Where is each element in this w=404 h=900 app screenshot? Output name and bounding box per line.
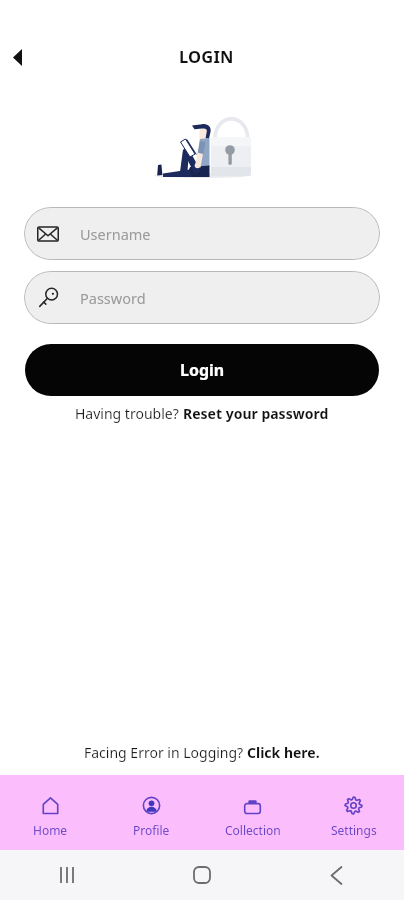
button[interactable]: Profile — [101, 775, 202, 850]
button[interactable]: Recent apps — [0, 850, 134, 900]
button[interactable]: Login — [25, 344, 379, 396]
button[interactable]: Reset your password — [183, 404, 329, 423]
button[interactable]: Click here. — [247, 743, 320, 762]
button[interactable]: Collection — [202, 775, 303, 850]
button[interactable]: Password — [24, 271, 380, 324]
button[interactable]: Back — [269, 850, 404, 900]
staticText: Facing Error in Logging? — [84, 743, 247, 762]
button[interactable]: Home — [134, 850, 269, 900]
button[interactable]: Back — [0, 37, 34, 77]
staticText: Having trouble? — [75, 404, 183, 423]
staticText: Login — [180, 359, 225, 381]
staticText: Settings — [331, 822, 377, 838]
staticText: LOGIN — [179, 45, 234, 67]
staticText: Collection — [225, 822, 281, 838]
staticText: Home — [33, 822, 68, 838]
staticText: Profile — [133, 822, 170, 838]
button[interactable]: Username — [24, 207, 380, 260]
staticText: Username — [80, 224, 151, 244]
button[interactable]: Settings — [303, 775, 404, 850]
staticText: Password — [80, 288, 146, 308]
button[interactable]: Home — [0, 775, 101, 850]
